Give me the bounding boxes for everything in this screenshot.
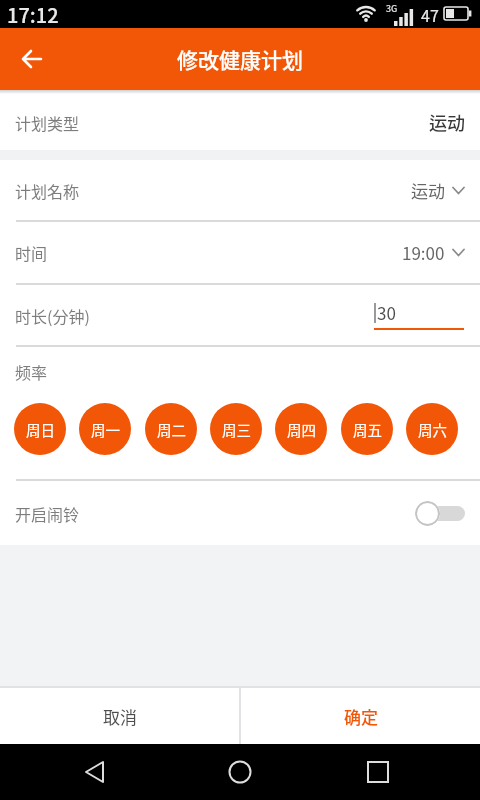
button[interactable]: 周六: [406, 403, 458, 455]
staticText: 计划类型: [15, 111, 80, 134]
button[interactable]: 取消: [0, 688, 239, 744]
staticText: 周二: [157, 419, 186, 440]
staticText: 周五: [353, 419, 382, 440]
staticText: 运动: [429, 109, 465, 135]
staticText: 周一: [91, 419, 120, 440]
button[interactable]: 周一: [79, 403, 131, 455]
button[interactable]: 计划名称: [0, 160, 480, 220]
button[interactable]: 时间: [0, 222, 480, 283]
staticText: 周六: [418, 419, 447, 440]
staticText: 3G: [386, 2, 398, 15]
button[interactable]: [10, 37, 54, 81]
staticText: 周三: [222, 419, 251, 440]
staticText: 19:00: [402, 240, 445, 265]
staticText: 30: [377, 300, 396, 325]
button[interactable]: 周五: [341, 403, 393, 455]
button[interactable]: 确定: [241, 688, 480, 744]
staticText: 运动: [411, 178, 445, 203]
staticText: 开启闹铃: [15, 502, 80, 525]
staticText: 修改健康计划: [177, 44, 303, 74]
staticText: 17:12: [7, 0, 59, 28]
staticText: 频率: [15, 360, 48, 383]
button[interactable]: 周三: [210, 403, 262, 455]
button[interactable]: 周二: [145, 403, 197, 455]
staticText: 时长(分钟): [15, 304, 90, 327]
staticText: 47: [421, 3, 439, 26]
staticText: 周四: [287, 419, 316, 440]
staticText: 确定: [344, 704, 378, 729]
staticText: 取消: [103, 704, 137, 729]
button[interactable]: [415, 500, 465, 526]
staticText: 周日: [26, 419, 55, 440]
staticText: 计划名称: [15, 179, 80, 202]
button[interactable]: 周四: [275, 403, 327, 455]
button[interactable]: 周日: [14, 403, 66, 455]
staticText: 时间: [15, 241, 48, 264]
